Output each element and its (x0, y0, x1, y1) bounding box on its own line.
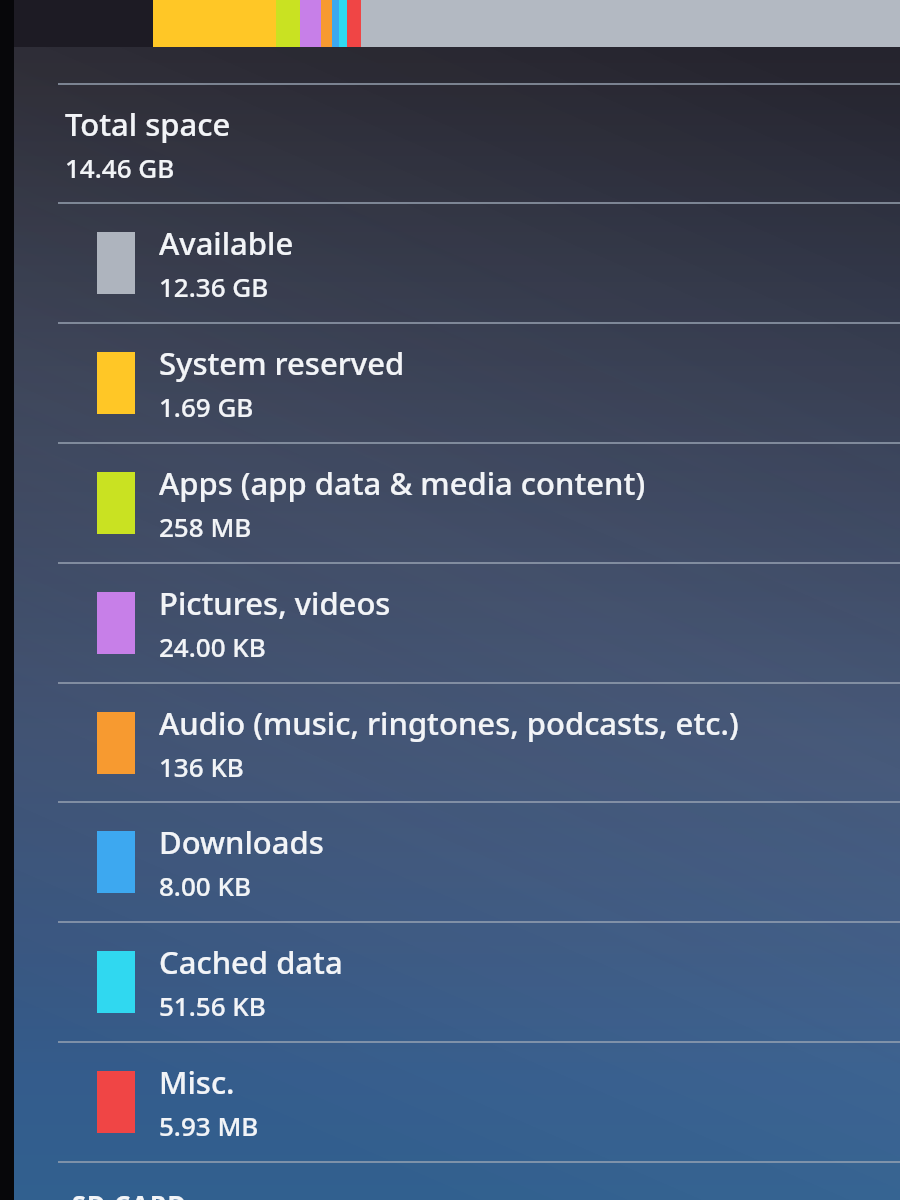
staticText: Pictures, videos (159, 582, 391, 624)
staticText: 1.69 GB (159, 389, 254, 424)
staticText: 12.36 GB (159, 269, 269, 304)
staticText: SD CARD (72, 1187, 188, 1200)
button[interactable]: Misc. (14, 1043, 900, 1161)
staticText: 14.46 GB (65, 150, 175, 185)
button[interactable]: Audio (music, ringtones, podcasts, etc.) (14, 684, 900, 801)
staticText: 5.93 MB (159, 1108, 259, 1143)
staticText: Total space (65, 103, 231, 145)
staticText: 8.00 KB (159, 868, 251, 903)
staticText: Misc. (159, 1061, 235, 1103)
staticText: 136 KB (159, 749, 244, 784)
button[interactable]: Cached data (14, 923, 900, 1041)
button[interactable]: Downloads (14, 803, 900, 921)
staticText: Cached data (159, 941, 343, 983)
staticText: Available (159, 222, 294, 264)
button[interactable]: Apps (app data & media content) (14, 444, 900, 562)
staticText: Downloads (159, 821, 324, 863)
staticText: System reserved (159, 342, 405, 384)
staticText: 51.56 KB (159, 988, 266, 1023)
button[interactable]: System reserved (14, 324, 900, 442)
staticText: 24.00 KB (159, 629, 266, 664)
staticText: Apps (app data & media content) (159, 462, 646, 504)
button[interactable]: Total space (14, 85, 900, 202)
staticText: 258 MB (159, 509, 252, 544)
button[interactable]: Pictures, videos (14, 564, 900, 682)
staticText: Audio (music, ringtones, podcasts, etc.) (159, 702, 739, 744)
button[interactable]: Available (14, 204, 900, 322)
button[interactable]: Storage usage bar (14, 0, 900, 47)
